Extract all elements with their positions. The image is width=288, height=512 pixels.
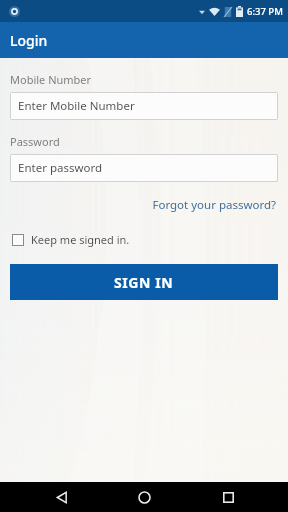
button[interactable]: Recent apps [205, 482, 251, 512]
staticText: Mobile Number [10, 72, 92, 87]
staticText: Enter password [18, 160, 103, 176]
button[interactable]: SIGN IN [10, 264, 278, 300]
staticText: Enter Mobile Number [18, 98, 135, 114]
button[interactable]: Enter Mobile Number [10, 92, 278, 120]
staticText: SIGN IN [114, 273, 174, 292]
staticText: Password [10, 134, 60, 149]
button[interactable]: Forgot your password? [150, 194, 278, 216]
staticText: 6:37 PM [247, 5, 283, 18]
staticText: Keep me signed in. [31, 232, 130, 247]
button[interactable]: Enter password [10, 154, 278, 182]
button[interactable]: Back [38, 482, 84, 512]
button[interactable]: Home [121, 482, 167, 512]
staticText: Login [10, 31, 48, 50]
button[interactable]: Keep me signed in. [10, 229, 132, 250]
